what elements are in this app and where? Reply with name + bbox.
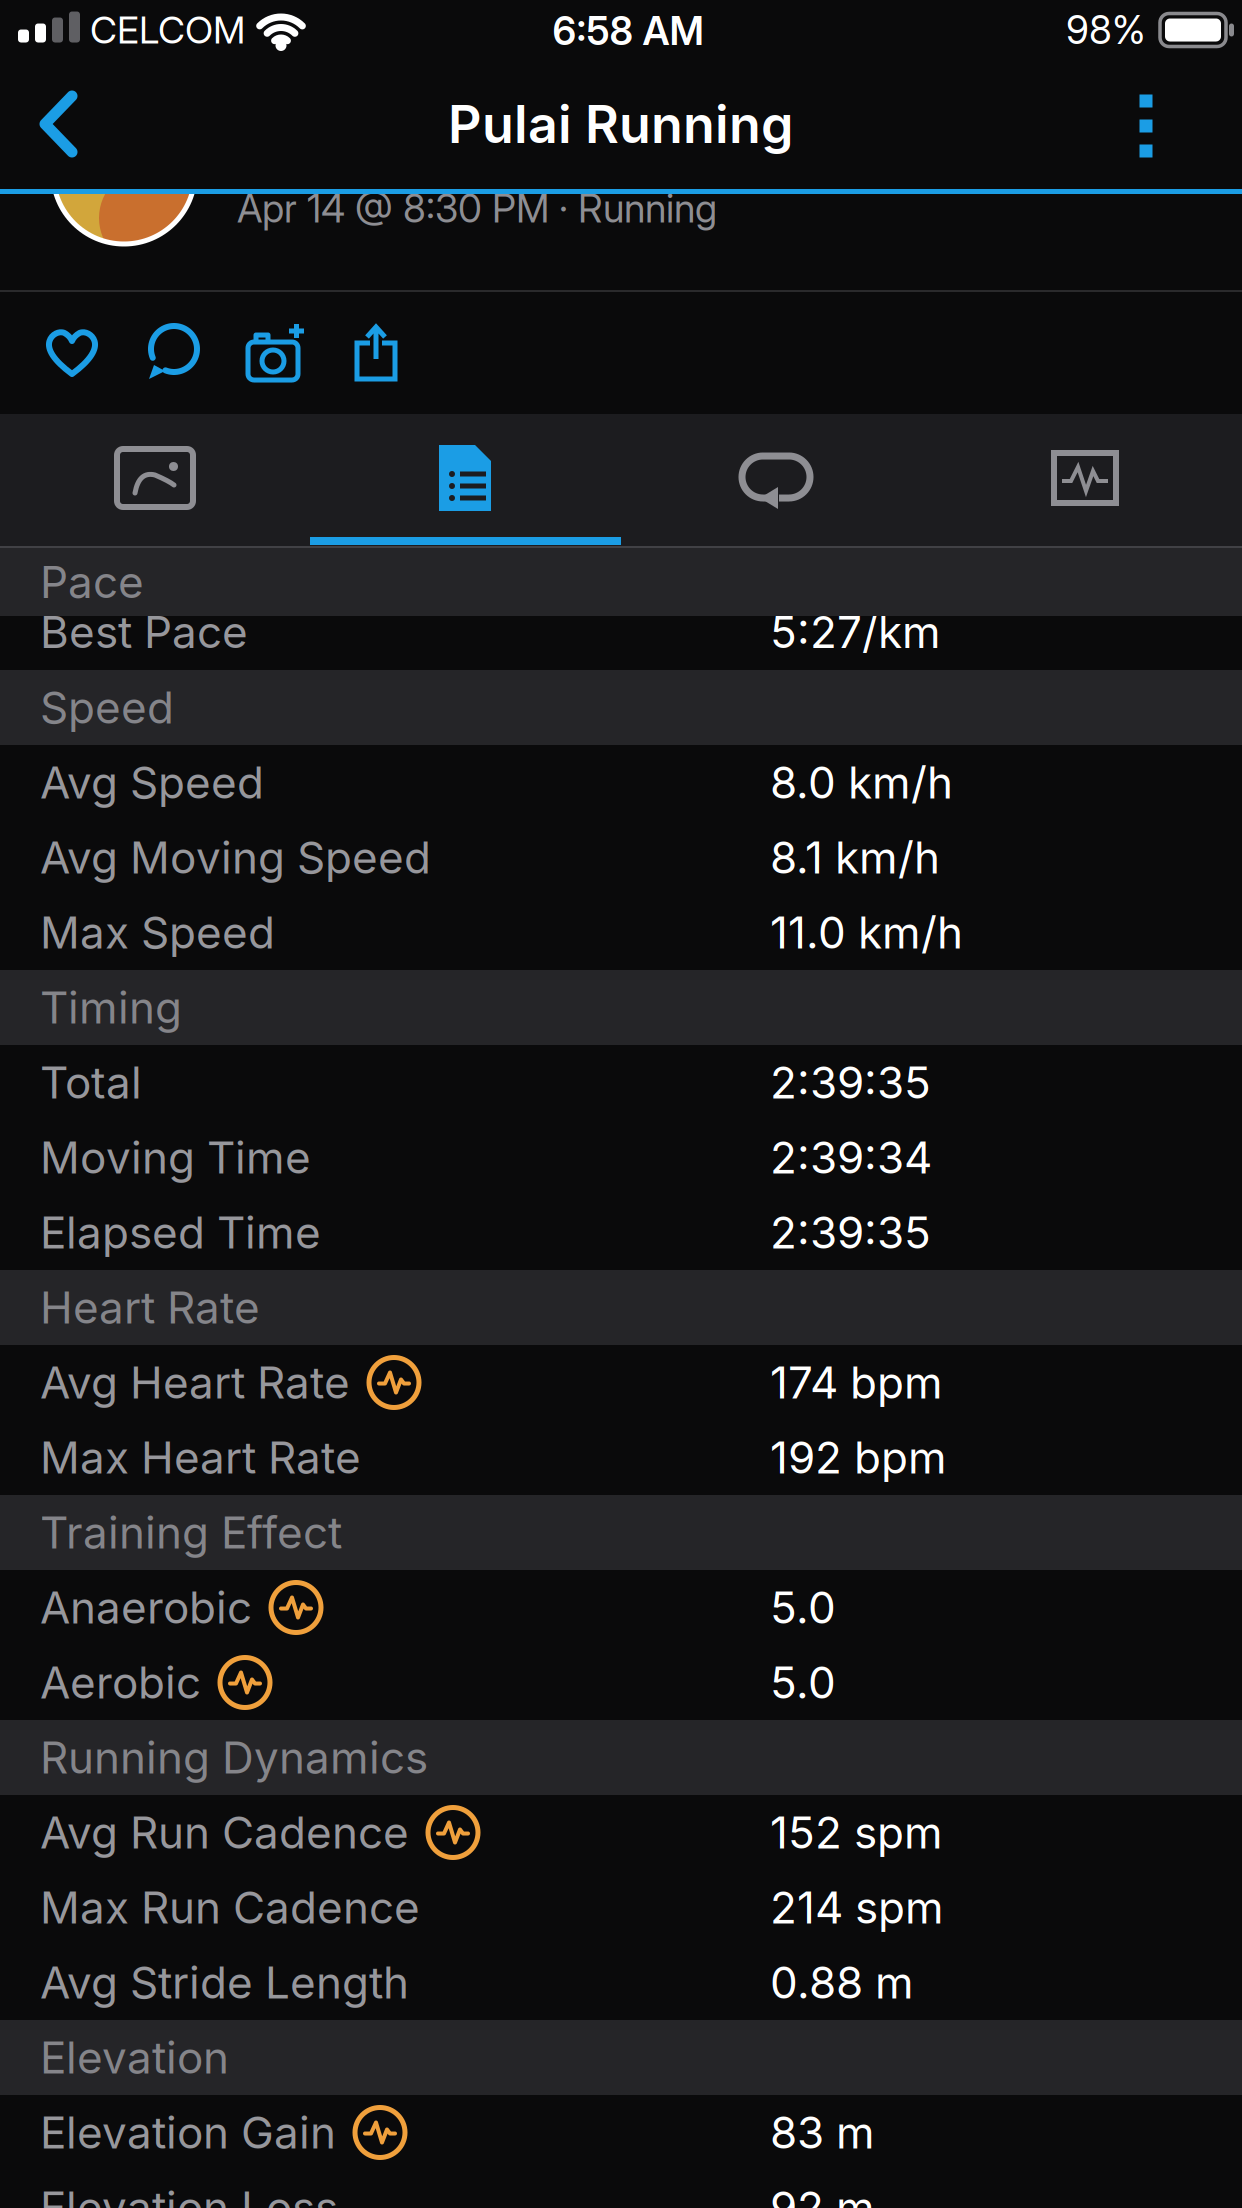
staticText: Max Run Cadence <box>40 1881 420 1934</box>
staticText: Max Speed <box>40 906 275 959</box>
staticText: 174 bpm <box>770 1356 943 1409</box>
staticText: 214 spm <box>770 1881 944 1934</box>
staticText: Timing <box>40 981 182 1034</box>
staticText: Running Dynamics <box>40 1731 428 1784</box>
staticText: Training Effect <box>40 1506 342 1559</box>
staticText: 5:27/km <box>770 605 941 659</box>
staticText: Elevation Loss <box>40 2181 338 2208</box>
staticText: Moving Time <box>40 1131 311 1184</box>
staticText: Avg Speed <box>40 756 264 809</box>
staticText: Aerobic <box>40 1656 201 1709</box>
staticText: 0.88 m <box>770 1956 914 2009</box>
staticText: 2:39:35 <box>770 1206 931 1259</box>
staticText: 83 m <box>770 2106 875 2159</box>
staticText: Elapsed Time <box>40 1206 321 1259</box>
staticText: Pace <box>40 555 144 609</box>
staticText: Speed <box>40 681 174 734</box>
staticText: 8.1 km/h <box>770 831 940 884</box>
staticText: 8.0 km/h <box>770 756 953 809</box>
staticText: Max Heart Rate <box>40 1431 361 1484</box>
staticText: 192 bpm <box>770 1431 947 1484</box>
staticText: Elevation <box>40 2031 229 2084</box>
staticText: Anaerobic <box>40 1581 252 1634</box>
staticText: Elevation Gain <box>40 2106 336 2159</box>
staticText: 98% <box>1066 7 1146 53</box>
staticText: Avg Moving Speed <box>40 831 431 884</box>
staticText: 2:39:34 <box>770 1131 932 1184</box>
staticText: Total <box>40 1056 142 1109</box>
staticText: 2:39:35 <box>770 1056 931 1109</box>
staticText: 5.0 <box>770 1656 836 1709</box>
staticText: Pulai Running <box>448 92 794 155</box>
staticText: Avg Run Cadence <box>40 1806 409 1859</box>
staticText: 6:58 AM <box>552 8 703 54</box>
staticText: Apr 14 @ 8:30 PM · Running <box>237 185 717 232</box>
staticText: 92 m <box>770 2181 875 2208</box>
staticText: Best Pace <box>40 605 248 659</box>
staticText: Avg Stride Length <box>40 1956 409 2009</box>
staticText: CELCOM <box>90 7 245 53</box>
staticText: Heart Rate <box>40 1281 260 1334</box>
staticText: 11.0 km/h <box>770 906 963 959</box>
staticText: Avg Heart Rate <box>40 1356 350 1409</box>
staticText: 5.0 <box>770 1581 836 1634</box>
staticText: 152 spm <box>770 1806 943 1859</box>
